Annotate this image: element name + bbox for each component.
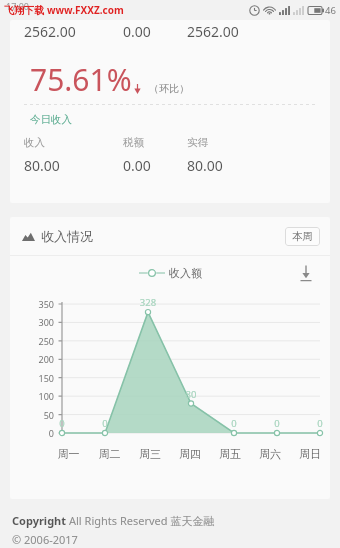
staticText: 收入额 [169, 266, 202, 280]
staticText: 税额 [123, 136, 144, 149]
staticText: 本周 [292, 230, 313, 243]
staticText: www.FXXZ.com [47, 3, 124, 17]
staticText: 周四 [170, 447, 210, 461]
staticText: 50 [10, 409, 54, 421]
staticText: 46 [325, 4, 336, 17]
button[interactable]: 收入情况 [10, 217, 330, 255]
button[interactable]: Download chart [296, 263, 316, 283]
staticText: 0 [306, 417, 330, 430]
staticText: 收入情况 [41, 228, 93, 244]
staticText: 300 [10, 316, 54, 328]
staticText: 0 [220, 417, 248, 430]
staticText: All Rights Reserved 蓝天金融 [69, 513, 215, 528]
staticText: Copyright [12, 513, 69, 528]
staticText: 0 [91, 417, 119, 430]
staticText: 0.00 [123, 156, 151, 175]
staticText: （环比） [149, 82, 189, 95]
staticText: 250 [10, 335, 54, 347]
button[interactable]: 收入额 [139, 266, 202, 280]
staticText: 2562.00 [187, 22, 239, 41]
staticText: 328 [134, 296, 162, 309]
staticText: 150 [10, 372, 54, 384]
staticText: 周日 [290, 447, 330, 461]
staticText: 80 [177, 388, 205, 401]
staticText: 周二 [89, 447, 130, 461]
staticText: 100 [10, 390, 54, 402]
staticText: 2562.00 [24, 22, 76, 41]
staticText: 0 [48, 417, 76, 430]
staticText: © 2006-2017 [12, 532, 78, 547]
staticText: 80.00 [187, 156, 223, 175]
staticText: 0 [263, 417, 291, 430]
staticText: 飞翔下载 [4, 4, 44, 17]
staticText: 周六 [250, 447, 290, 461]
staticText: 周一 [48, 447, 89, 461]
staticText: 200 [10, 353, 54, 365]
staticText: 0 [10, 427, 54, 439]
staticText: 0.00 [123, 22, 151, 41]
staticText: 收入 [24, 136, 45, 149]
button[interactable]: 本周 [285, 227, 320, 246]
staticText: 周三 [130, 447, 170, 461]
staticText: 今日收入 [30, 113, 72, 126]
staticText: 350 [10, 298, 54, 310]
staticText: 实得 [187, 136, 208, 149]
staticText: 17:00 [6, 0, 30, 12]
staticText: 75.61% [30, 59, 132, 100]
staticText: 周五 [210, 447, 250, 461]
staticText: 80.00 [24, 156, 60, 175]
